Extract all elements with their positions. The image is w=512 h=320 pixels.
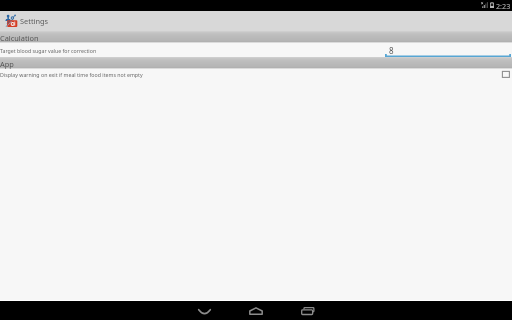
staticText: Settings	[20, 16, 49, 26]
staticText: Display warning on exit if meal time foo…	[0, 71, 143, 78]
button[interactable]: Back	[178, 301, 230, 320]
staticText: App	[0, 59, 14, 69]
button[interactable]: Home	[230, 301, 282, 320]
staticText: 8	[389, 45, 394, 56]
staticText: Target blood sugar value for correction	[0, 47, 97, 54]
button[interactable]: Recent apps	[281, 301, 333, 320]
button[interactable]: 8	[385, 44, 511, 58]
staticText: 2:23	[496, 1, 511, 11]
staticText: Calculation	[0, 33, 39, 43]
button[interactable]: Display warning on exit if meal time foo…	[0, 68, 512, 82]
button[interactable]: Settings	[0, 11, 512, 31]
button[interactable]: Target blood sugar value for correction	[0, 43, 512, 57]
